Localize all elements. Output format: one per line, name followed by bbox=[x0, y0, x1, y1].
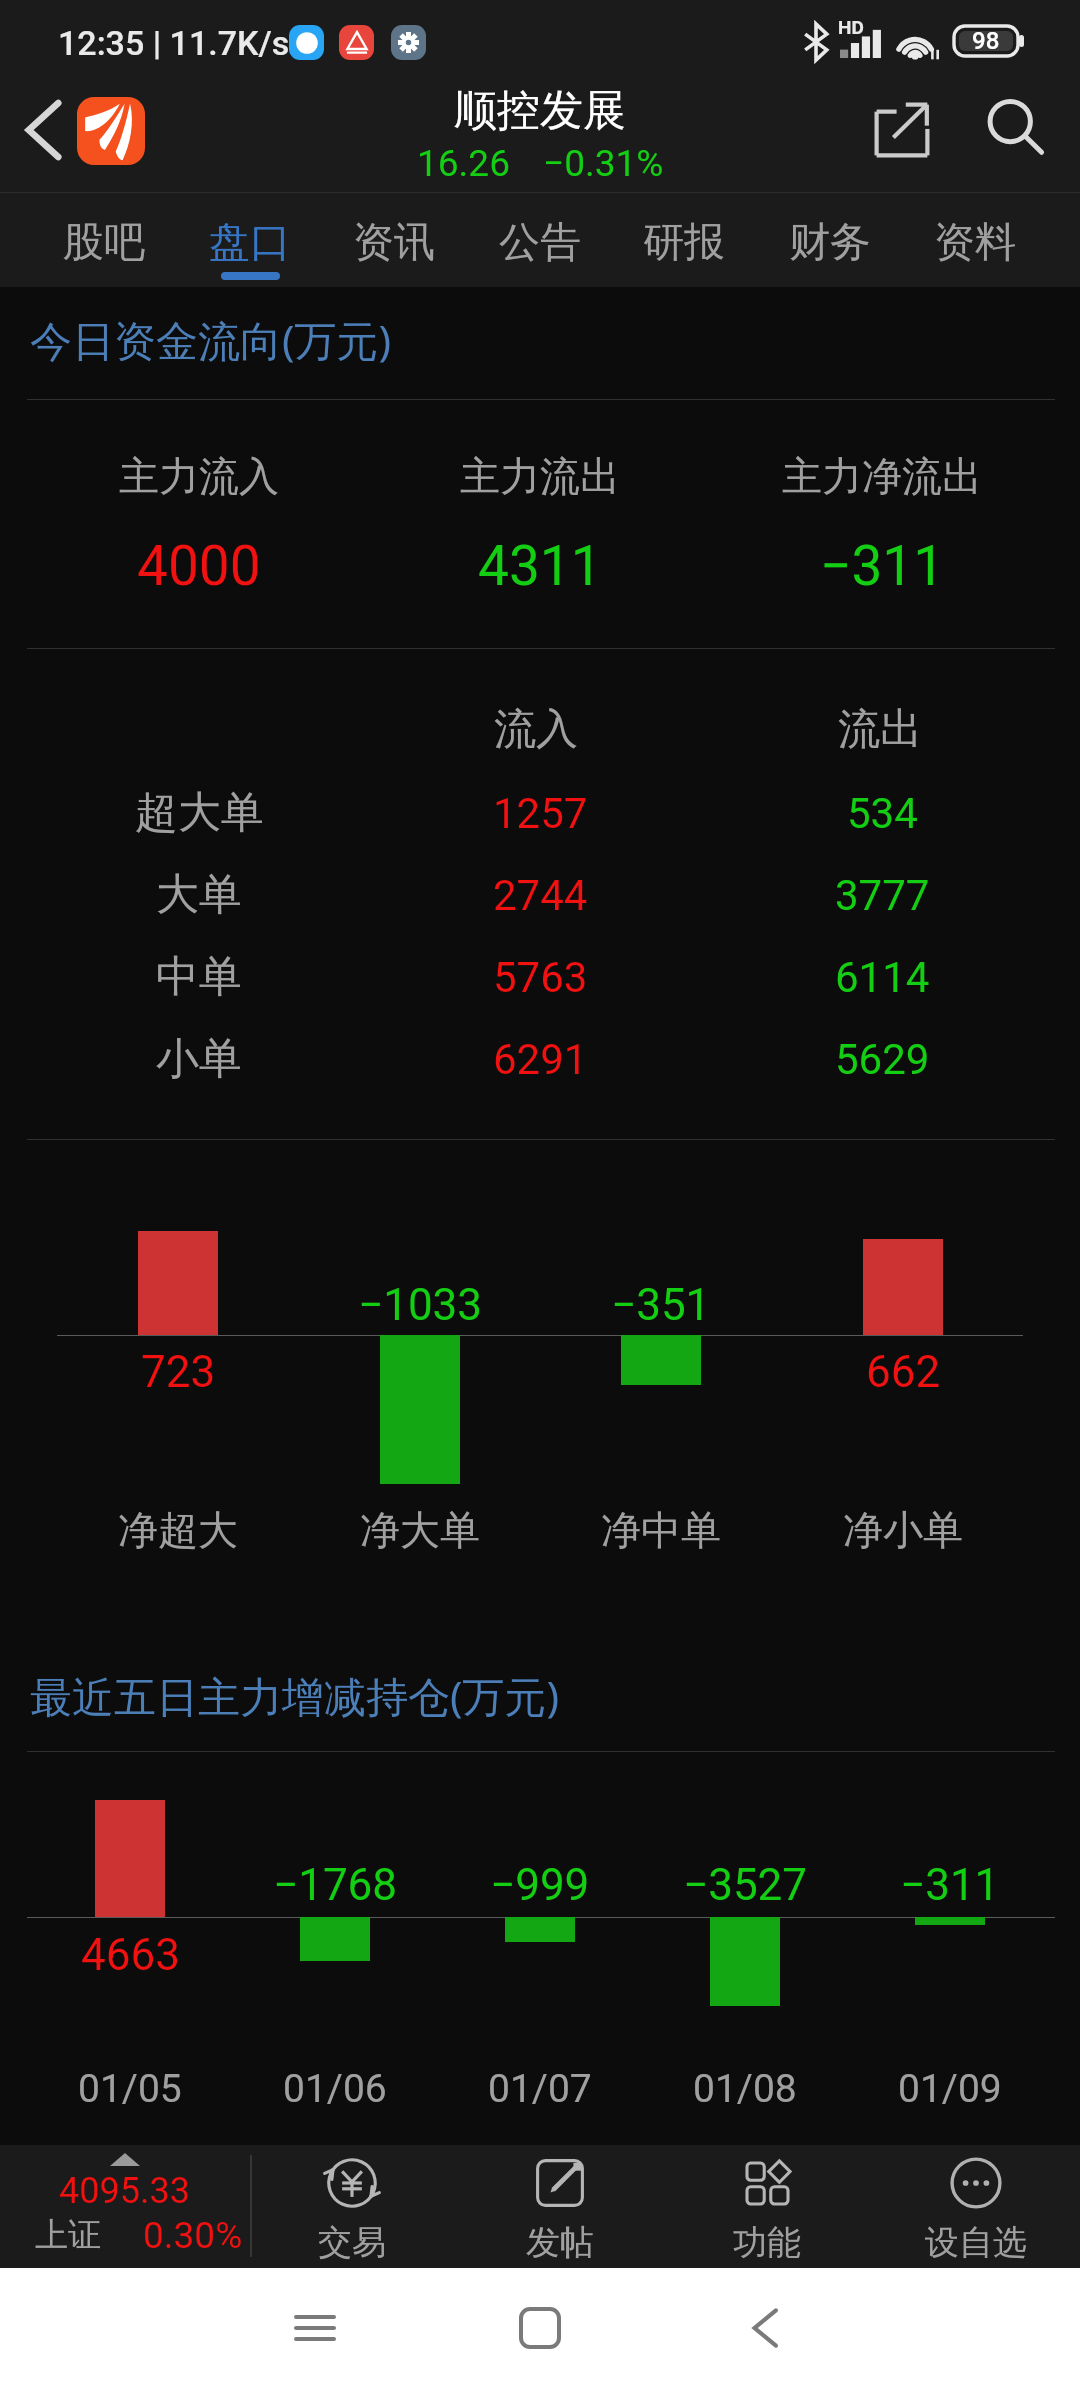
button[interactable]: App logo bbox=[77, 97, 145, 165]
staticText: 今日资金流向(万元) bbox=[30, 311, 392, 368]
button[interactable]: 4095.33 bbox=[0, 2145, 248, 2268]
button[interactable]: 公告 bbox=[468, 193, 612, 287]
staticText: 4095.33 bbox=[59, 2170, 190, 2212]
staticText: −0.31% bbox=[543, 142, 664, 185]
staticText: 功能 bbox=[733, 2221, 801, 2264]
staticText: 盘口 bbox=[209, 217, 291, 269]
staticText: 98 bbox=[972, 27, 1000, 55]
button[interactable]: 研报 bbox=[612, 193, 756, 287]
staticText: 01/09 bbox=[898, 2066, 1002, 2112]
button[interactable]: Back bbox=[7, 94, 79, 166]
staticText: −351 bbox=[611, 1279, 711, 1331]
staticText: 中单 bbox=[156, 950, 242, 1004]
staticText: 01/06 bbox=[283, 2066, 387, 2112]
staticText: 16.26 bbox=[417, 142, 510, 185]
staticText: 12:35 | 11.7K/s bbox=[58, 23, 290, 63]
staticText: 流入 bbox=[494, 703, 578, 756]
staticText: 公告 bbox=[499, 217, 581, 269]
staticText: 超大单 bbox=[135, 786, 264, 840]
staticText: 研报 bbox=[643, 217, 725, 269]
staticText: 主力流出 bbox=[460, 451, 620, 501]
staticText: 主力净流出 bbox=[782, 451, 982, 501]
button[interactable]: 资讯 bbox=[322, 193, 466, 287]
staticText: 5763 bbox=[493, 953, 588, 1002]
staticText: 净大单 bbox=[360, 1505, 480, 1555]
button[interactable]: 设自选 bbox=[876, 2145, 1076, 2268]
staticText: 净小单 bbox=[843, 1505, 963, 1555]
button[interactable]: Share bbox=[862, 90, 942, 170]
button[interactable]: 财务 bbox=[758, 193, 902, 287]
staticText: 大单 bbox=[156, 868, 242, 922]
staticText: 顺控发展 bbox=[454, 84, 626, 138]
staticText: 4000 bbox=[137, 534, 261, 598]
button[interactable]: 资料 bbox=[903, 193, 1047, 287]
staticText: −311 bbox=[820, 534, 945, 598]
staticText: 上证 bbox=[35, 2214, 101, 2256]
staticText: −1768 bbox=[273, 1859, 398, 1911]
button[interactable]: 功能 bbox=[667, 2145, 867, 2268]
button[interactable]: 发帖 bbox=[460, 2145, 660, 2268]
staticText: 01/05 bbox=[78, 2066, 182, 2112]
staticText: 发帖 bbox=[526, 2221, 594, 2264]
staticText: 0.30% bbox=[143, 2214, 243, 2257]
staticText: 5629 bbox=[835, 1035, 930, 1084]
staticText: 3777 bbox=[835, 871, 930, 920]
staticText: 2744 bbox=[493, 871, 588, 920]
staticText: 净超大 bbox=[118, 1505, 238, 1555]
staticText: 662 bbox=[866, 1346, 941, 1398]
staticText: 最近五日主力增减持仓(万元) bbox=[30, 1667, 560, 1724]
staticText: 01/08 bbox=[693, 2066, 797, 2112]
staticText: HD bbox=[838, 16, 864, 38]
staticText: 小单 bbox=[156, 1032, 242, 1086]
staticText: −999 bbox=[490, 1859, 590, 1911]
staticText: 723 bbox=[141, 1346, 216, 1398]
staticText: 财务 bbox=[789, 217, 871, 269]
staticText: 资料 bbox=[934, 217, 1016, 269]
staticText: 设自选 bbox=[925, 2221, 1027, 2264]
button[interactable]: 盘口 bbox=[178, 193, 322, 287]
button[interactable]: Recents bbox=[275, 2288, 355, 2368]
button[interactable]: Back bbox=[725, 2288, 805, 2368]
staticText: −3527 bbox=[683, 1859, 808, 1911]
button[interactable]: 股吧 bbox=[32, 193, 176, 287]
staticText: 4663 bbox=[81, 1929, 180, 1981]
staticText: 01/07 bbox=[488, 2066, 592, 2112]
staticText: 资讯 bbox=[353, 217, 435, 269]
staticText: 534 bbox=[847, 789, 918, 838]
staticText: −311 bbox=[900, 1859, 1000, 1911]
staticText: 1257 bbox=[493, 789, 588, 838]
button[interactable]: Search bbox=[976, 88, 1056, 168]
staticText: 主力流入 bbox=[119, 451, 279, 501]
staticText: 交易 bbox=[318, 2221, 386, 2264]
staticText: 股吧 bbox=[63, 217, 145, 269]
button[interactable]: 交易 bbox=[252, 2145, 452, 2268]
staticText: 4311 bbox=[478, 534, 602, 598]
staticText: 流出 bbox=[838, 703, 922, 756]
staticText: 6291 bbox=[493, 1035, 588, 1084]
staticText: 净中单 bbox=[601, 1505, 721, 1555]
staticText: −1033 bbox=[358, 1279, 483, 1331]
staticText: 6114 bbox=[835, 953, 930, 1002]
button[interactable]: Home bbox=[500, 2288, 580, 2368]
